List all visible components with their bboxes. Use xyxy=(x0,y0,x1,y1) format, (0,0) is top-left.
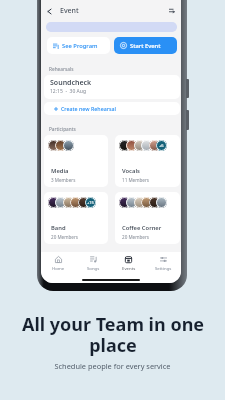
button[interactable]: Start Event xyxy=(114,37,177,54)
staticText: Coffee Corner xyxy=(122,224,162,232)
staticText: Events xyxy=(122,265,136,271)
button[interactable]: Create new Rehearsal xyxy=(44,102,180,115)
staticText: Soundcheck xyxy=(50,78,92,88)
button[interactable]: Sort xyxy=(166,5,178,17)
staticText: Participants xyxy=(49,126,76,132)
staticText: 11 Members xyxy=(122,177,150,183)
button[interactable]: Back xyxy=(43,5,55,17)
staticText: Start Event xyxy=(130,42,161,50)
staticText: Songs xyxy=(87,265,100,271)
staticText: Rehearsals xyxy=(49,66,74,72)
staticText: Settings xyxy=(155,265,172,271)
staticText: 12:15 - 30 Aug xyxy=(50,88,86,95)
staticText: 20 Members xyxy=(51,234,79,240)
button[interactable]: Songs xyxy=(76,252,111,271)
button[interactable]: Settings xyxy=(146,252,181,271)
button[interactable]: +15 xyxy=(44,192,108,244)
button[interactable]: Events xyxy=(111,252,146,271)
staticText: All your Team in one place xyxy=(20,312,206,358)
staticText: +15 xyxy=(87,200,94,205)
button[interactable]: See Program xyxy=(47,37,110,54)
staticText: Event xyxy=(60,6,79,16)
staticText: 3 Members xyxy=(51,177,76,183)
staticText: Create new Rehearsal xyxy=(61,105,116,112)
button[interactable]: Home xyxy=(41,252,76,271)
staticText: Home xyxy=(52,265,65,271)
button[interactable]: Media xyxy=(44,135,108,187)
staticText: Schedule people for every service xyxy=(0,361,225,371)
button[interactable]: Soundcheck xyxy=(44,75,180,99)
staticText: +6 xyxy=(159,143,164,148)
staticText: Vocals xyxy=(122,167,140,175)
button[interactable]: +6 xyxy=(115,135,180,187)
staticText: Media xyxy=(51,167,69,175)
staticText: Band xyxy=(51,224,66,232)
button[interactable]: Coffee Corner xyxy=(115,192,180,244)
staticText: See Program xyxy=(62,42,98,50)
staticText: 20 Members xyxy=(122,234,150,240)
